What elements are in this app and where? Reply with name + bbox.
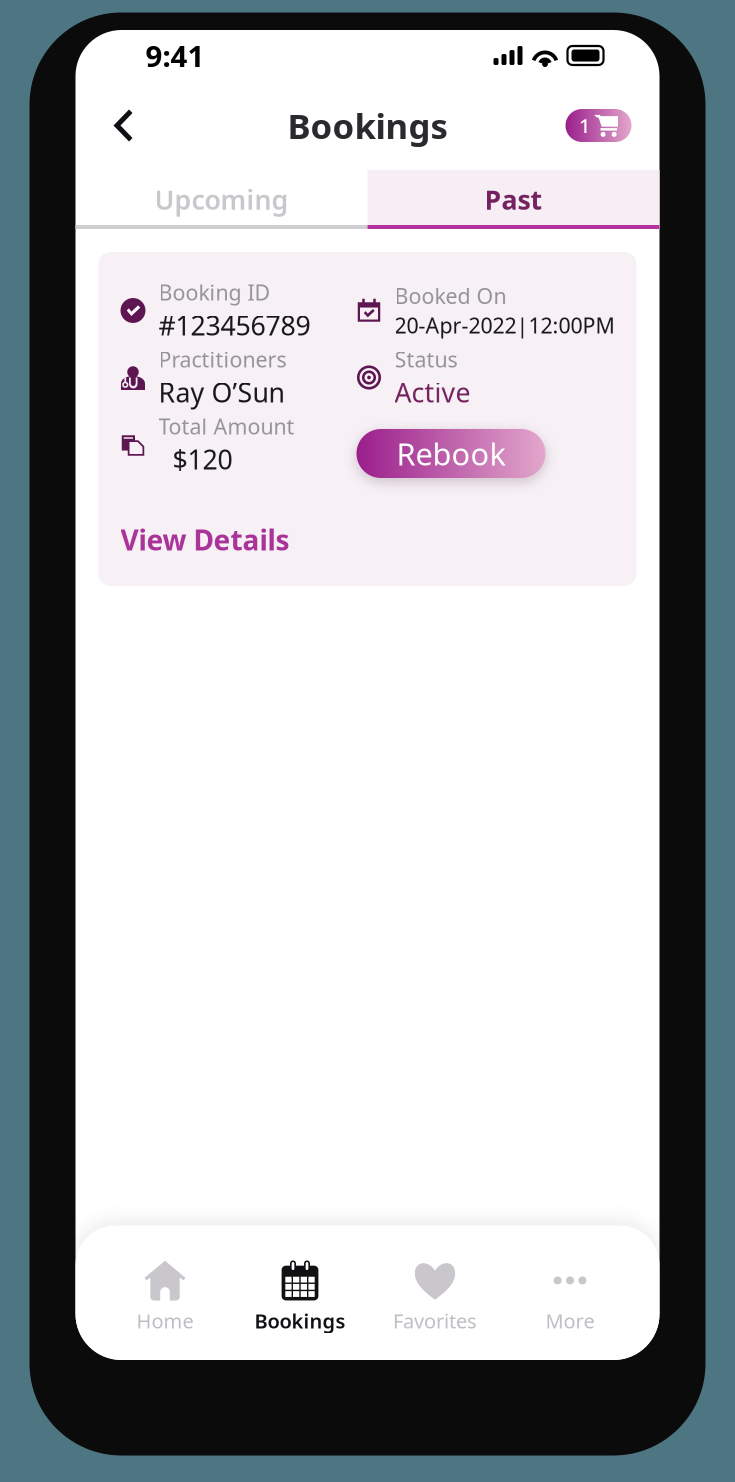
button[interactable]: Favorites (367, 1259, 502, 1334)
button[interactable]: More (502, 1259, 637, 1334)
button[interactable]: Cart (565, 109, 631, 142)
staticText: Active (394, 374, 470, 410)
button[interactable]: Back (103, 98, 142, 152)
button[interactable]: View Details (120, 521, 289, 558)
staticText: #123456789 (158, 307, 310, 343)
staticText: Status (394, 345, 457, 373)
button[interactable]: Past (367, 170, 659, 229)
staticText: Rebook (396, 433, 505, 474)
staticText: Favorites (393, 1307, 477, 1334)
staticText: View Details (120, 521, 289, 558)
staticText: More (545, 1307, 594, 1334)
staticText: Past (484, 182, 542, 217)
staticText: 20-Apr-2022|12:00PM (394, 311, 614, 339)
staticText: Ray O’Sun (158, 374, 284, 410)
button[interactable]: Bookings (232, 1259, 367, 1334)
staticText: Upcoming (154, 182, 288, 217)
staticText: Booked On (394, 282, 506, 310)
button[interactable]: Upcoming (75, 170, 367, 229)
staticText: Total Amount (158, 412, 294, 440)
staticText: Home (136, 1307, 193, 1334)
button[interactable]: Rebook (356, 429, 545, 478)
staticText: Practitioners (158, 345, 286, 373)
staticText: 1 (579, 112, 590, 139)
button[interactable]: Home (97, 1259, 232, 1334)
staticText: $120 (172, 441, 232, 477)
staticText: Bookings (287, 102, 447, 148)
staticText: 9:41 (145, 36, 204, 75)
staticText: Bookings (254, 1307, 345, 1334)
staticText: Booking ID (158, 278, 270, 306)
